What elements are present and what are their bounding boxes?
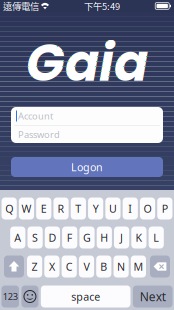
button[interactable]: J [114, 226, 129, 248]
staticText: Password [18, 128, 60, 140]
staticText: F [67, 230, 73, 245]
button[interactable]: S [27, 226, 43, 248]
staticText: Account [18, 110, 53, 122]
button[interactable]: F [62, 226, 77, 248]
button[interactable]: space [41, 285, 130, 307]
staticText: T [75, 201, 81, 216]
staticText: E [41, 201, 47, 216]
button[interactable]: T [71, 197, 86, 219]
button[interactable]: W [19, 197, 34, 219]
staticText: Z [32, 259, 38, 274]
staticText: Gaia [26, 27, 148, 98]
staticText: 123 [3, 290, 18, 303]
button[interactable]: I [123, 197, 138, 219]
button[interactable]: X [44, 255, 59, 277]
button[interactable]: 123 [1, 285, 19, 307]
staticText: V [83, 259, 89, 274]
button[interactable]: Y [88, 197, 103, 219]
staticText: H [100, 230, 108, 245]
staticText: 遠傳電信 [3, 0, 39, 13]
button[interactable]: C [62, 255, 77, 277]
staticText: O [143, 201, 151, 216]
button[interactable]: Shift [4, 255, 24, 277]
staticText: Logon [71, 160, 103, 174]
button[interactable]: V [79, 255, 94, 277]
staticText: R [58, 201, 65, 216]
button[interactable]: Logon [11, 157, 163, 177]
staticText: Next [140, 288, 166, 304]
button[interactable]: Emoji [21, 285, 38, 307]
button[interactable]: O [140, 197, 155, 219]
staticText: 下午5:49 [84, 0, 120, 13]
button[interactable]: N [113, 255, 129, 277]
staticText: L [153, 230, 159, 245]
button[interactable]: D [45, 226, 60, 248]
button[interactable]: Z [27, 255, 42, 277]
button[interactable]: Q [1, 197, 17, 219]
staticText: B [100, 259, 107, 274]
staticText: Q [5, 201, 13, 216]
button[interactable]: P [157, 197, 172, 219]
staticText: M [133, 259, 143, 274]
button[interactable]: H [97, 226, 112, 248]
button[interactable]: E [36, 197, 51, 219]
staticText: W [21, 201, 31, 216]
staticText: Y [93, 201, 99, 216]
staticText: X [49, 259, 55, 274]
button[interactable]: R [53, 197, 69, 219]
staticText: K [135, 230, 142, 245]
button[interactable]: Delete [150, 255, 170, 277]
staticText: S [32, 230, 38, 245]
staticText: N [117, 259, 125, 274]
button[interactable]: K [131, 226, 146, 248]
staticText: I [128, 201, 132, 216]
staticText: C [66, 259, 73, 274]
button[interactable]: G [79, 226, 95, 248]
staticText: J [120, 230, 123, 245]
staticText: P [162, 201, 168, 216]
button[interactable]: L [149, 226, 164, 248]
staticText: A [14, 230, 21, 245]
button[interactable]: A [10, 226, 25, 248]
staticText: D [48, 230, 56, 245]
staticText: U [109, 201, 117, 216]
button[interactable]: M [131, 255, 146, 277]
button[interactable]: Next [133, 285, 173, 307]
staticText: G [83, 230, 91, 245]
button[interactable]: B [96, 255, 111, 277]
staticText: space [71, 289, 100, 304]
button[interactable]: U [105, 197, 120, 219]
